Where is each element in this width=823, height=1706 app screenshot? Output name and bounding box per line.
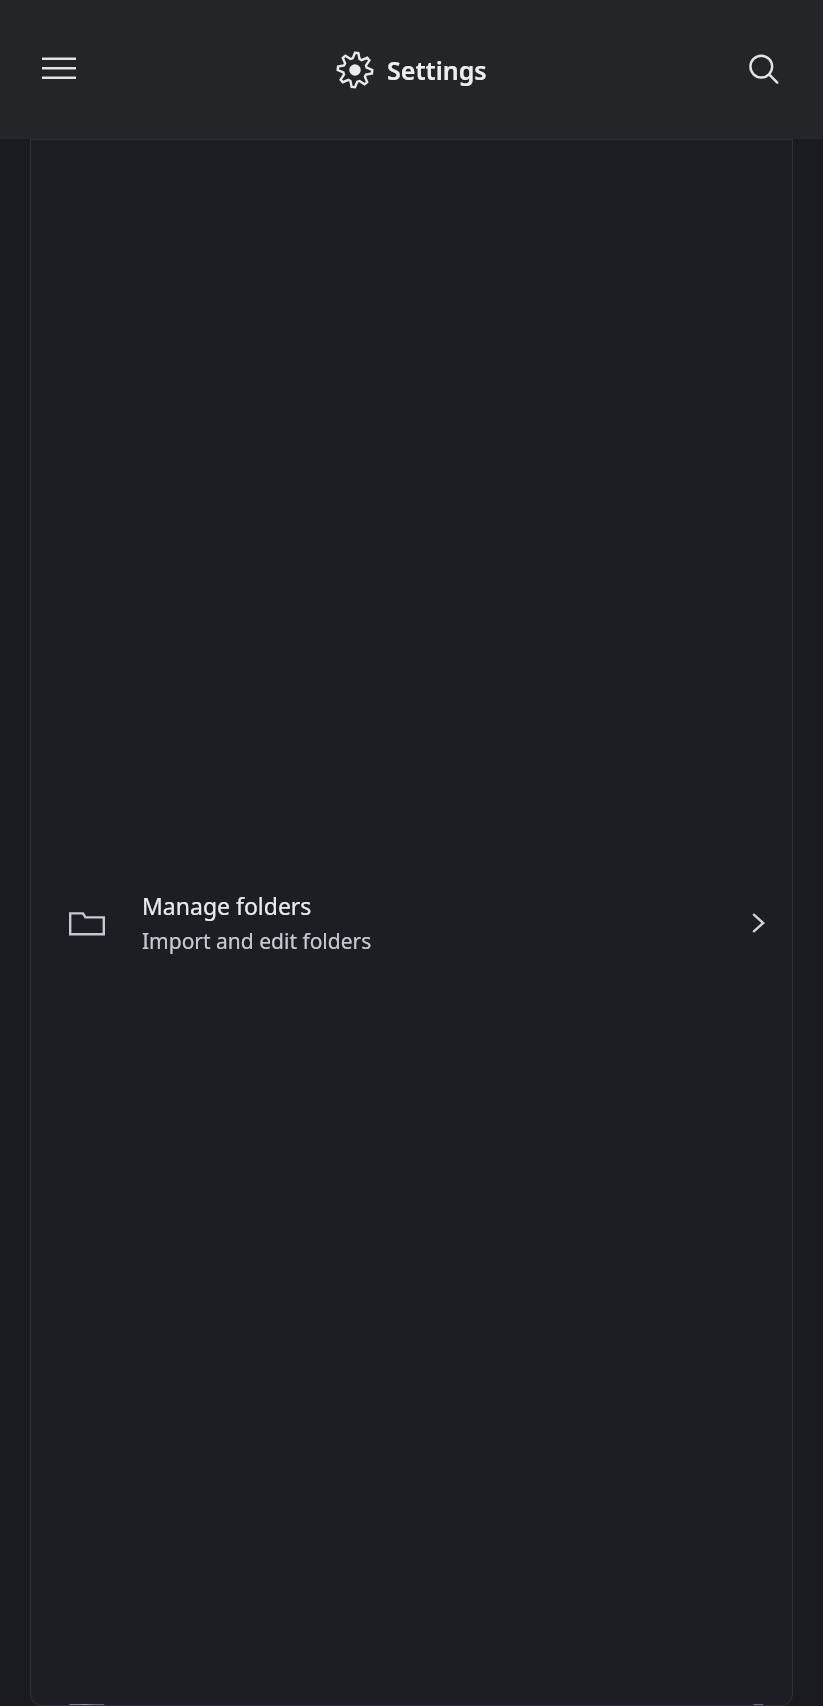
staticText: Settings [387,53,487,87]
staticText: Import and edit folders [142,927,372,956]
button[interactable]: Manage folders [30,139,793,1706]
button[interactable]: Menu [28,39,90,101]
button[interactable]: Search [733,39,795,101]
staticText: Manage folders [142,890,312,921]
